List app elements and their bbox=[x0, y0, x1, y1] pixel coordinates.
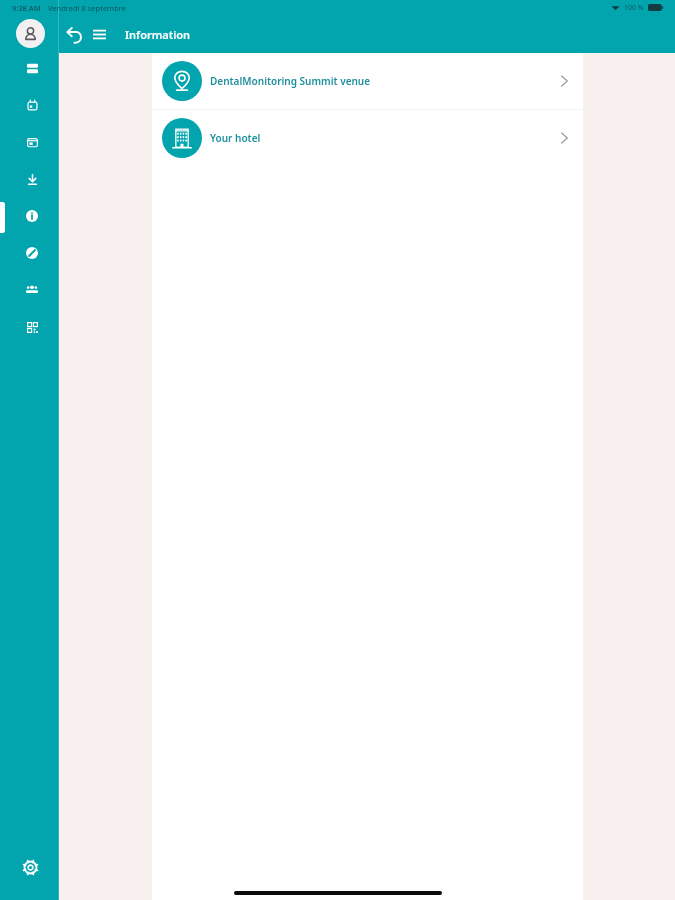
button[interactable]: Menu bbox=[87, 17, 111, 52]
button[interactable]: Explore bbox=[0, 234, 59, 271]
staticText: 100 % bbox=[624, 3, 644, 13]
button[interactable]: Calendar bbox=[0, 86, 59, 123]
button[interactable]: Agenda bbox=[0, 49, 59, 86]
button[interactable]: Attendees bbox=[0, 271, 59, 308]
button[interactable]: Settings bbox=[16, 853, 44, 881]
button[interactable]: Downloads bbox=[0, 160, 59, 197]
button[interactable]: Back bbox=[62, 18, 87, 53]
staticText: 9:38 AM bbox=[12, 3, 41, 13]
staticText: Your hotel bbox=[210, 131, 261, 145]
button[interactable]: Your hotel bbox=[152, 110, 583, 166]
staticText: Vendredi 8 septembre bbox=[48, 3, 126, 13]
button[interactable]: Scan badge bbox=[0, 308, 59, 345]
button[interactable]: Information bbox=[0, 197, 59, 234]
staticText: Information bbox=[125, 27, 191, 42]
button[interactable]: My schedule bbox=[0, 123, 59, 160]
button[interactable]: DentalMonitoring Summit venue bbox=[152, 53, 583, 109]
staticText: DentalMonitoring Summit venue bbox=[210, 74, 371, 88]
button[interactable]: Profile bbox=[16, 19, 45, 48]
